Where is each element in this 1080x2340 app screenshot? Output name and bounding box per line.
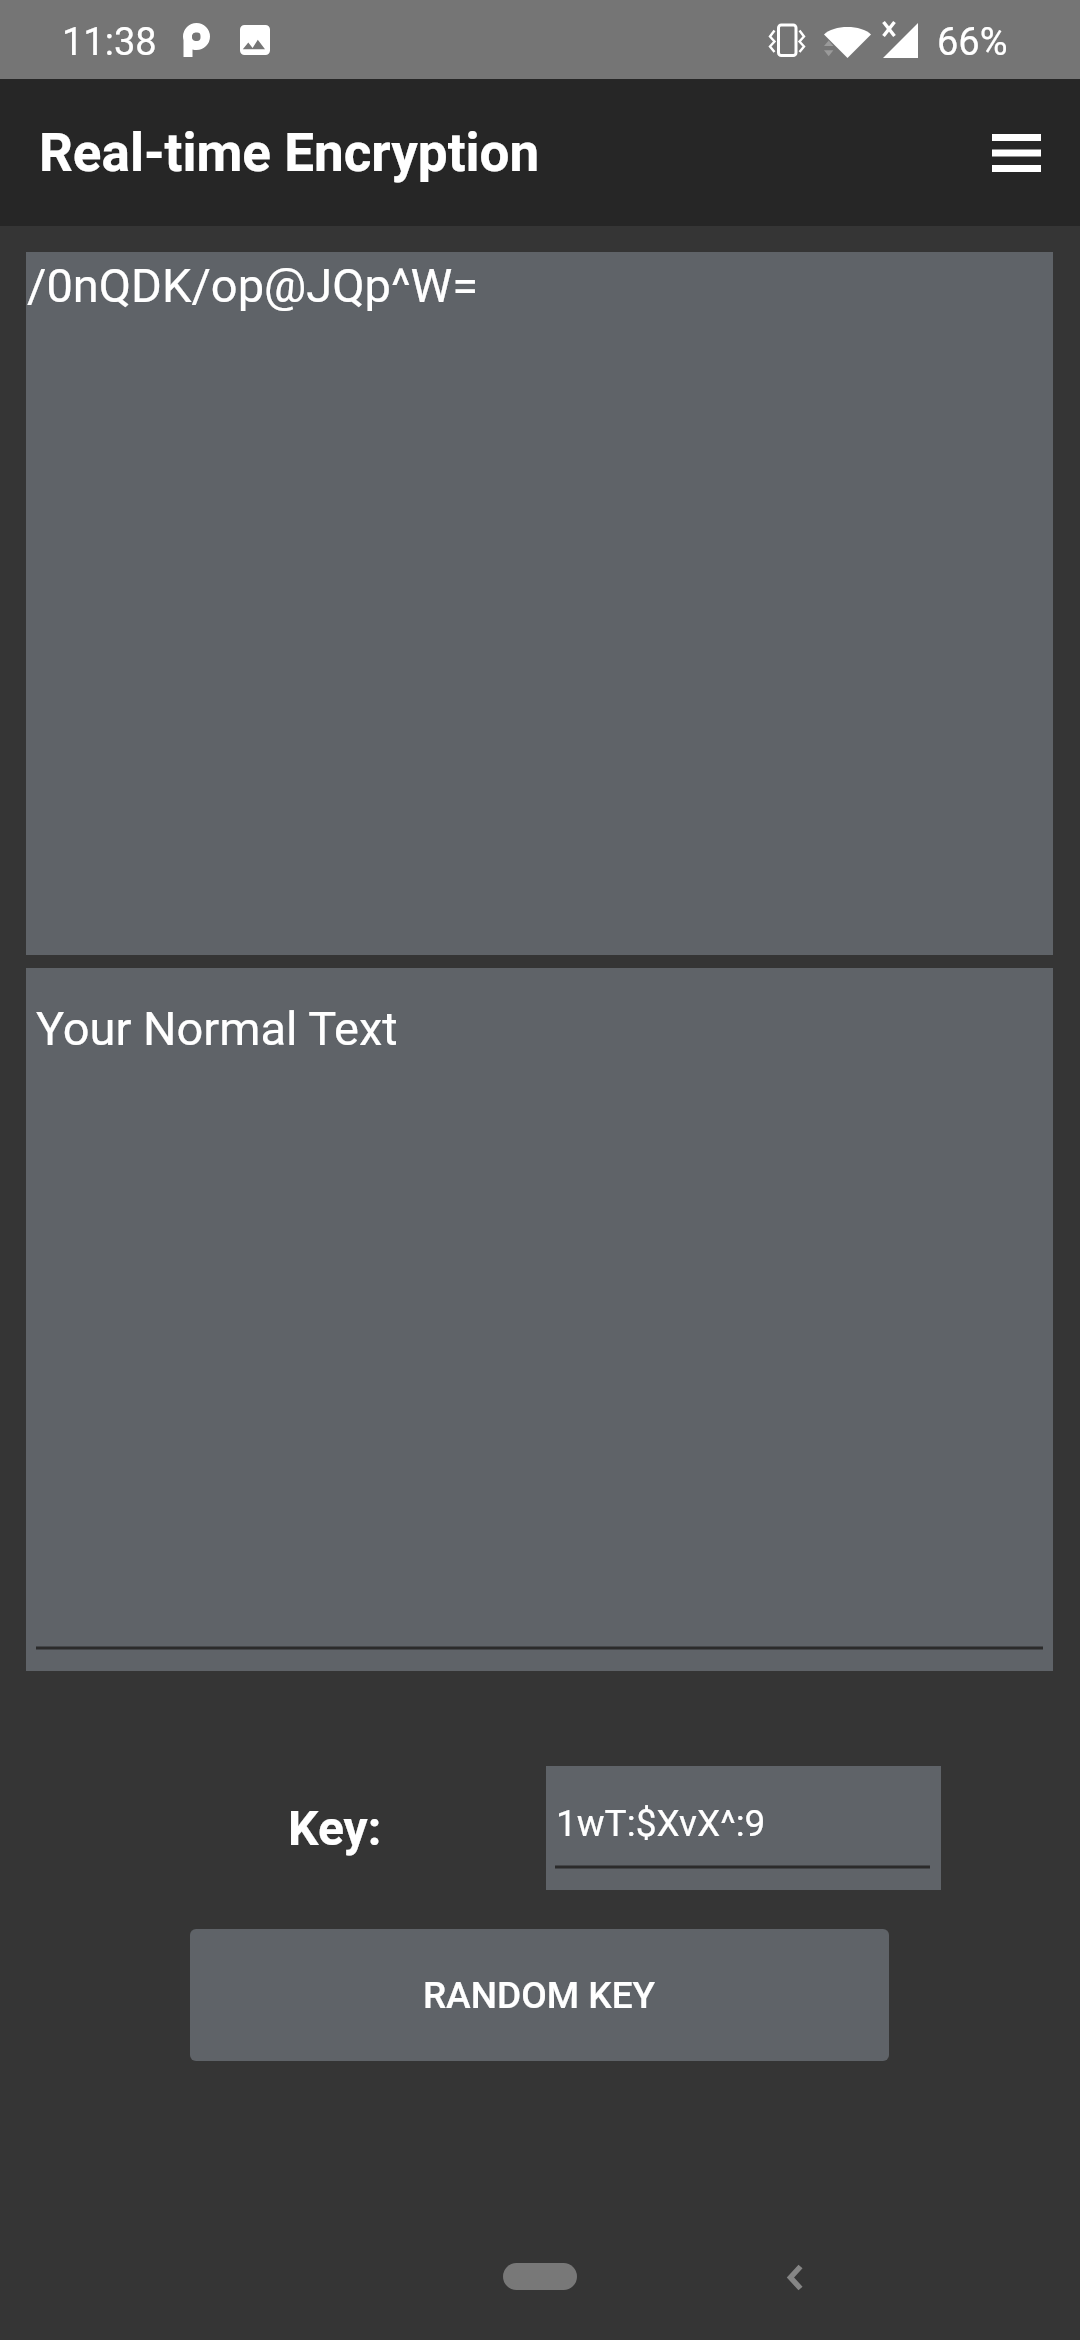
staticText: 66% (937, 20, 1008, 65)
staticText: Key: (288, 1800, 382, 1856)
button[interactable]: Home (503, 2263, 577, 2290)
button[interactable]: RANDOM KEY (190, 1929, 889, 2061)
staticText: RANDOM KEY (423, 1974, 656, 2017)
staticText: 11:38 (62, 20, 157, 65)
button[interactable]: Your Normal Text (26, 968, 1053, 1671)
button[interactable]: /0nQDK/op@JQp^W= (26, 252, 1053, 955)
button[interactable]: Back (750, 2232, 840, 2322)
button[interactable]: 1wT:$XvX^:9 (546, 1766, 941, 1890)
button[interactable]: Menu (972, 109, 1060, 197)
staticText: Your Normal Text (36, 1001, 398, 1056)
staticText: 1wT:$XvX^:9 (556, 1802, 766, 1845)
staticText: /0nQDK/op@JQp^W= (27, 258, 479, 313)
staticText: Real-time Encryption (39, 122, 540, 184)
